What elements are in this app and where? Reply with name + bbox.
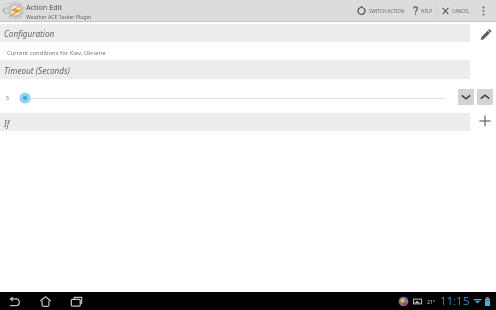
button[interactable]: Recent apps [69,294,83,308]
button[interactable]: Edit configuration [476,24,496,42]
button[interactable]: HELP [408,0,435,21]
button[interactable]: SWITCH ACTION [352,0,406,21]
staticText: Action Edit [26,2,63,12]
staticText: 5 [6,94,9,101]
button[interactable]: Timeout slider [19,92,31,104]
staticText: Current conditions for Kiev, Ukraine [7,49,106,57]
button[interactable]: Add condition [474,113,496,131]
staticText: HELP [421,8,433,14]
button[interactable]: CANCEL [437,0,470,21]
button[interactable]: More options [476,0,491,21]
button[interactable]: Up [0,0,8,21]
staticText: CANCEL [452,8,470,14]
staticText: Configuration [4,28,55,39]
button[interactable]: Increase [477,89,493,105]
staticText: Timeout (Seconds) [4,65,70,76]
button[interactable]: Back [7,294,21,308]
staticText: 21° [427,298,436,305]
button[interactable]: Decrease [458,89,474,105]
staticText: Weather ACE Tasker Plugin [26,13,92,20]
staticText: 11:15 [440,293,470,309]
staticText: SWITCH ACTION [369,8,405,14]
button[interactable]: Home [38,294,52,308]
button[interactable]: Current conditions for Kiev, Ukraine [0,42,496,60]
staticText: If [4,118,10,129]
